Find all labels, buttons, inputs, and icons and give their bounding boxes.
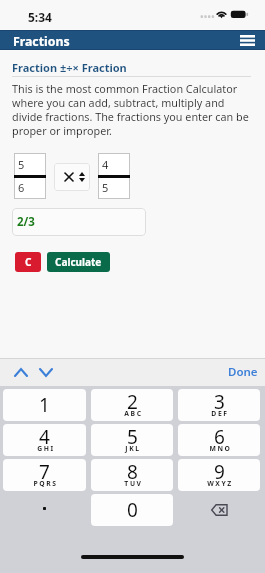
staticText: 6	[18, 180, 25, 195]
button[interactable]: 5	[14, 153, 46, 176]
staticText: ABC	[124, 409, 143, 418]
button[interactable]: C	[15, 252, 41, 272]
staticText: 8	[127, 459, 138, 485]
button[interactable]: 6	[14, 176, 46, 199]
button[interactable]: 1	[3, 389, 86, 421]
staticText: WXYZ	[207, 479, 233, 488]
staticText: 4	[102, 157, 109, 172]
staticText: This is the most common Fraction Calcula…	[12, 81, 250, 138]
button[interactable]: 2/3	[12, 208, 146, 236]
button[interactable]: 5	[91, 424, 173, 456]
button[interactable]: 4	[98, 153, 130, 176]
button[interactable]: 9	[178, 459, 260, 491]
staticText: 5	[102, 180, 109, 195]
staticText: 5:34	[28, 9, 52, 25]
button[interactable]: Decimal point	[3, 494, 86, 526]
button[interactable]: Operation selector	[54, 163, 90, 191]
staticText: 1	[39, 392, 50, 418]
staticText: PQRS	[33, 479, 58, 488]
staticText: 0	[127, 497, 138, 523]
staticText: Calculate	[55, 255, 102, 269]
button[interactable]: 8	[91, 459, 173, 491]
button[interactable]: 4	[3, 424, 86, 456]
staticText: MNO	[209, 444, 232, 453]
staticText: 9	[214, 459, 225, 485]
staticText: GHI	[37, 444, 55, 453]
staticText: JKL	[125, 444, 141, 453]
staticText: 7	[39, 459, 50, 485]
staticText: TUV	[124, 479, 143, 488]
staticText: Fractions	[13, 33, 70, 50]
staticText: 2/3	[17, 214, 35, 230]
button[interactable]: 5	[98, 176, 130, 199]
staticText: 4	[39, 424, 50, 450]
staticText: 3	[214, 389, 225, 415]
staticText: 2	[127, 389, 138, 415]
button[interactable]: Done	[228, 364, 258, 380]
button[interactable]: Backspace	[178, 494, 260, 526]
staticText: C	[25, 255, 32, 269]
staticText: 5	[127, 424, 138, 450]
button[interactable]: Next field	[33, 360, 58, 384]
staticText: Fraction ±÷× Fraction	[12, 60, 127, 75]
staticText: 5	[18, 157, 25, 172]
button[interactable]: 6	[178, 424, 260, 456]
button[interactable]: 0	[91, 494, 173, 526]
staticText: DEF	[211, 409, 229, 418]
staticText: Done	[228, 364, 258, 380]
button[interactable]: Previous field	[8, 360, 33, 384]
button[interactable]: Menu	[237, 30, 257, 50]
button[interactable]: 7	[3, 459, 86, 491]
button[interactable]: 2	[91, 389, 173, 421]
button[interactable]: 3	[178, 389, 260, 421]
button[interactable]: Calculate	[47, 252, 110, 272]
staticText: 6	[214, 424, 225, 450]
